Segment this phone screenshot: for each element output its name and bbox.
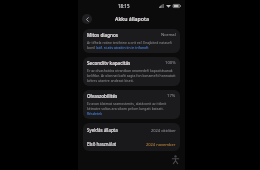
button[interactable]: Back xyxy=(82,14,92,24)
staticText: Olvaszobilités xyxy=(87,93,167,99)
staticText: Akku állapota xyxy=(115,15,149,22)
staticText: Seconditv kapacitás xyxy=(87,60,165,66)
button[interactable]: Első használat xyxy=(83,137,180,151)
staticText: 17% xyxy=(167,93,176,99)
staticText: 2024 október xyxy=(151,128,176,133)
button[interactable]: Olvaszobilités xyxy=(83,90,180,119)
button[interactable]: Seconditv kapacitás xyxy=(83,57,180,86)
staticText: 100% xyxy=(165,60,176,66)
staticText: 2024 november xyxy=(146,142,176,147)
staticText: 18:15 xyxy=(118,3,130,9)
button[interactable]: Mitos diagnos xyxy=(83,29,180,53)
button[interactable]: Syekfás állapta xyxy=(83,123,180,137)
staticText: Normal xyxy=(161,32,176,38)
staticText: Ez avan álatmat szamostenits, alatáconit… xyxy=(87,101,176,116)
staticText: Első használat xyxy=(87,141,146,147)
staticText: Mitos diagnos xyxy=(87,32,161,38)
staticText: Ar tifhela rotine tesifotne a orit esf. … xyxy=(87,40,176,50)
button[interactable]: Accessibility menu xyxy=(168,152,182,166)
staticText: Syekfás állapta xyxy=(87,127,151,133)
staticText: Er az olvashatóra otrantban onamedefi ka… xyxy=(87,68,176,83)
